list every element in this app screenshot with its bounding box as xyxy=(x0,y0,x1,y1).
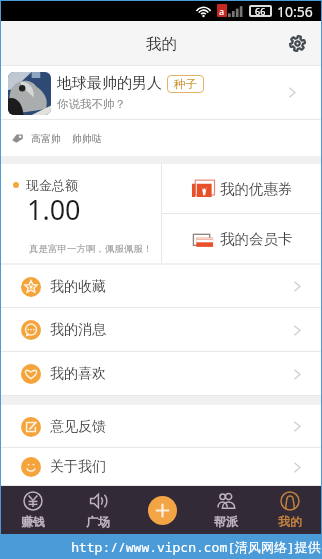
staticText: 广场 xyxy=(86,514,110,529)
button[interactable]: 广场 xyxy=(65,486,130,534)
button[interactable]: 我的消息 xyxy=(0,308,322,352)
staticText: 我的 xyxy=(278,514,302,529)
button[interactable]: 我的优惠券 xyxy=(162,164,322,213)
staticText: 帅帅哒 xyxy=(72,132,102,145)
staticText: 关于我们 xyxy=(50,458,106,476)
button[interactable]: 帮派 xyxy=(194,486,258,534)
staticText: 种子 xyxy=(174,77,197,91)
staticText: 现金总额 xyxy=(26,177,78,193)
staticText: 意见反馈 xyxy=(50,418,106,436)
staticText: 1.00 xyxy=(27,191,81,228)
staticText: http://www.vipcn.com[清风网络]提供 xyxy=(71,538,321,556)
staticText: 我的优惠券 xyxy=(220,180,293,198)
staticText: 你说我不帅？ xyxy=(57,97,126,111)
button[interactable]: 赚钱 xyxy=(0,486,65,534)
staticText: 我的 xyxy=(146,34,177,54)
staticText: a xyxy=(219,5,225,17)
button[interactable]: 意见反馈 xyxy=(0,405,322,448)
staticText: 我的收藏 xyxy=(50,278,106,296)
staticText: 高富帅 xyxy=(31,132,61,145)
staticText: 地球最帅的男人 xyxy=(57,74,162,93)
button[interactable]: Settings xyxy=(280,26,314,60)
button[interactable]: 我的喜欢 xyxy=(0,352,322,396)
staticText: 10:56 xyxy=(277,2,313,21)
button[interactable]: 现金总额 xyxy=(0,164,161,263)
button[interactable]: 地球最帅的男人 xyxy=(0,66,322,119)
staticText: 帮派 xyxy=(214,514,238,529)
staticText: 我的喜欢 xyxy=(50,365,106,383)
button[interactable]: 高富帅 xyxy=(0,120,322,156)
button[interactable]: 关于我们 xyxy=(0,448,322,486)
button[interactable]: Add xyxy=(130,486,194,534)
staticText: 赚钱 xyxy=(21,514,45,529)
button[interactable]: 我的会员卡 xyxy=(162,214,322,263)
staticText: 真是富甲一方啊，佩服佩服！ xyxy=(29,243,153,255)
button[interactable]: 我的收藏 xyxy=(0,265,322,308)
staticText: 66 xyxy=(255,5,266,17)
button[interactable]: 我的 xyxy=(258,486,322,534)
staticText: 我的会员卡 xyxy=(220,230,293,248)
staticText: 我的消息 xyxy=(50,321,106,339)
